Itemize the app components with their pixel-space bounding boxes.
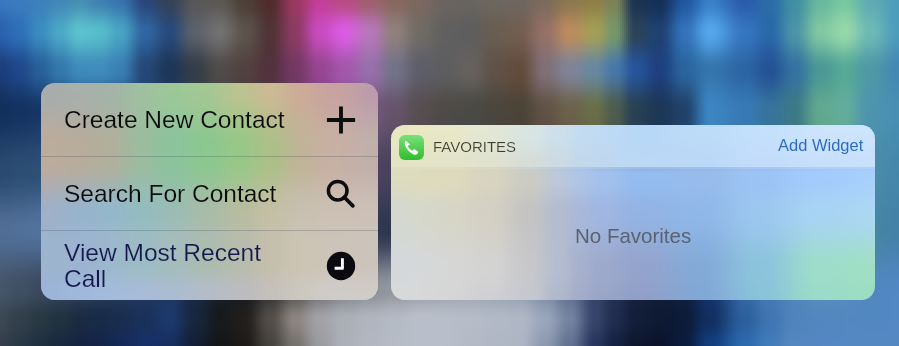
staticText: Search For Contact [64,180,277,207]
staticText: FAVORITES [433,138,517,155]
button[interactable]: View Most Recent Call [41,231,378,300]
staticText: No Favorites [575,224,692,247]
button[interactable]: Create New Contact [41,83,378,156]
button[interactable]: Search For Contact [41,157,378,230]
button[interactable]: Add Widget [778,136,864,154]
staticText: View Most Recent Call [64,239,261,292]
staticText: Create New Contact [64,106,285,133]
staticText: Add Widget [778,136,864,154]
